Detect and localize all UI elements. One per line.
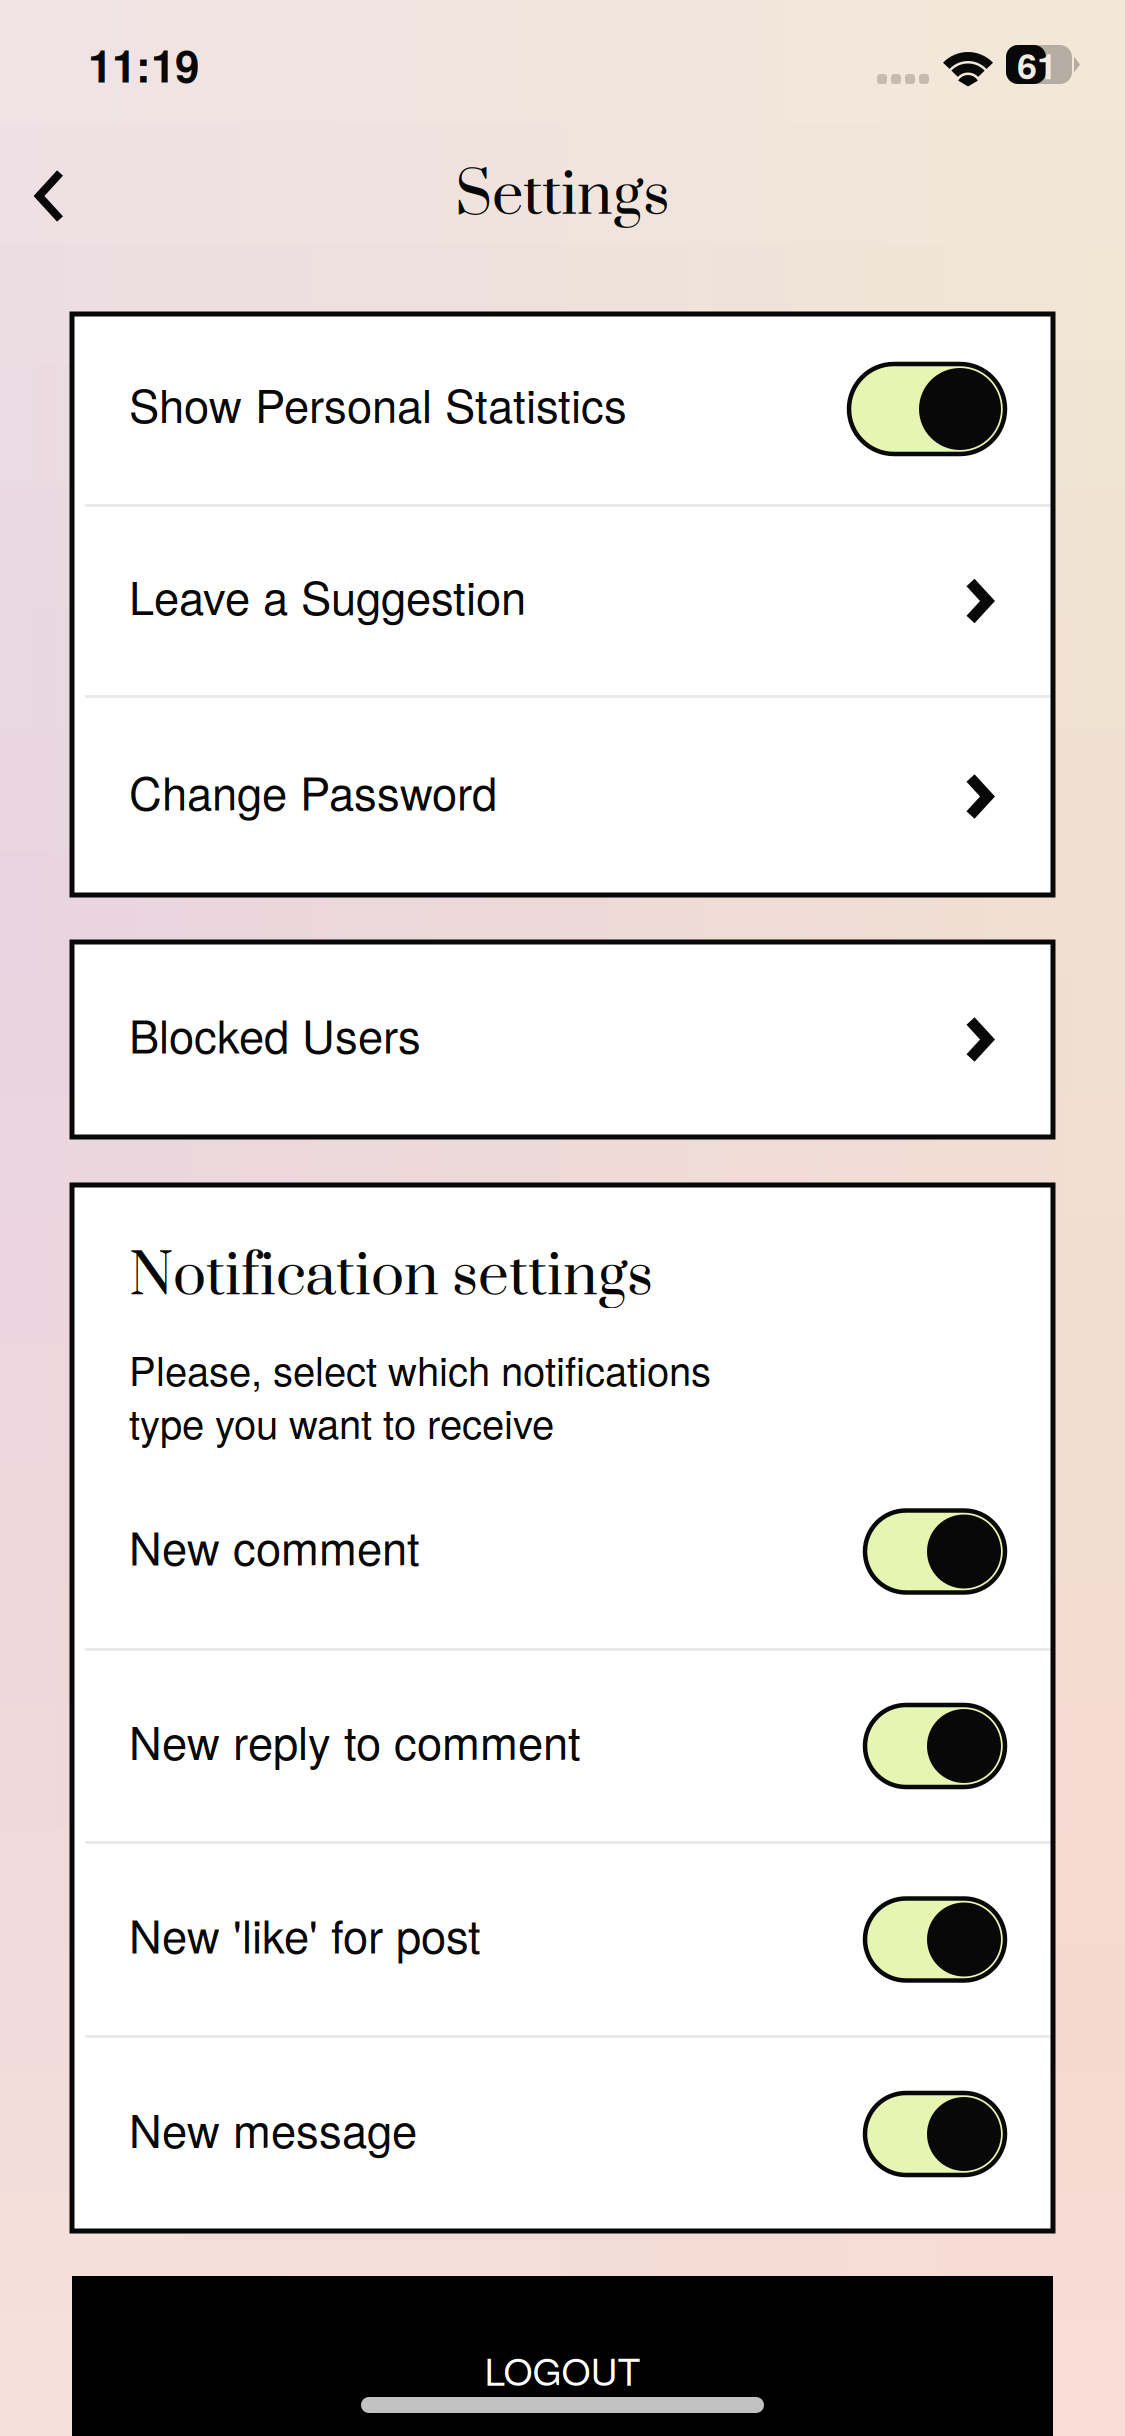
staticText: New 'like' for post [129,1901,481,1966]
staticText: 61 [1017,39,1057,90]
staticText: Please, select which notifications [129,1340,711,1397]
button[interactable]: Show Personal Statistics [72,314,1053,504]
button[interactable]: New reply to comment [72,1651,1053,1841]
staticText: New reply to comment [129,1708,581,1773]
button[interactable]: Blocked Users [72,942,1053,1137]
button[interactable]: LOGOUT [0,2276,1125,2436]
staticText: New comment [129,1513,420,1578]
staticText: New message [129,2096,417,2161]
button[interactable]: New comment [72,1455,1053,1648]
staticText: Show Personal Statistics [129,371,627,436]
button[interactable]: New 'like' for post [72,1844,1053,2035]
button[interactable]: Change Password [72,698,1053,895]
button[interactable]: Back [0,143,98,249]
staticText: Change Password [129,758,497,823]
staticText: Leave a Suggestion [129,563,526,628]
button[interactable]: Leave a Suggestion [72,507,1053,695]
staticText: LOGOUT [484,2343,640,2396]
staticText: type you want to receive [129,1393,554,1450]
staticText: Settings [455,158,670,234]
button[interactable]: New message [72,2038,1053,2230]
staticText: 11:19 [88,33,199,96]
staticText: Blocked Users [129,1001,421,1066]
staticText: Notification settings [129,1240,653,1314]
